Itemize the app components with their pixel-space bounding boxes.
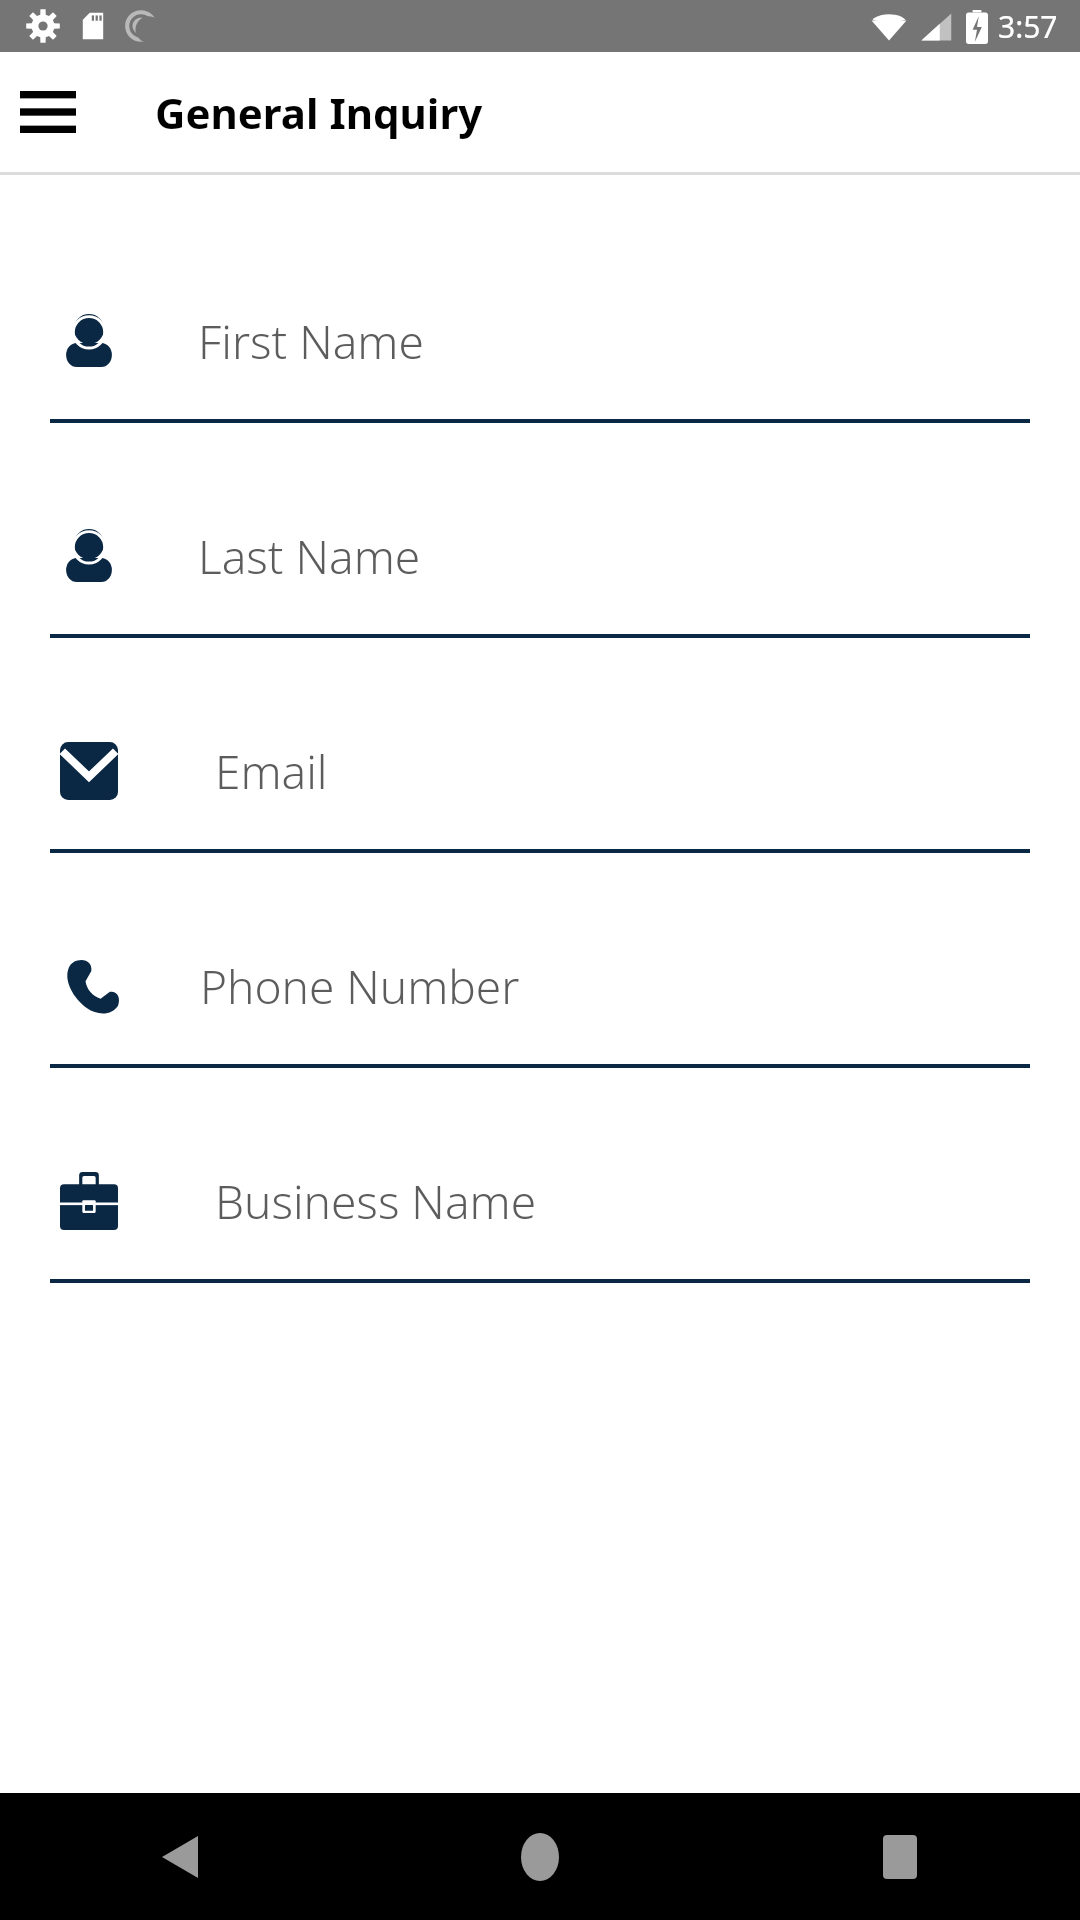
staticText: 3:57 (998, 6, 1058, 47)
button[interactable]: Home (360, 1793, 720, 1920)
staticText: Email (215, 740, 328, 803)
staticText: General Inquiry (155, 84, 483, 141)
button[interactable]: Email (0, 723, 1080, 853)
staticText: Phone Number (200, 955, 520, 1018)
button[interactable]: First Name (0, 293, 1080, 423)
button[interactable]: Open navigation menu (14, 78, 82, 146)
button[interactable]: Back (0, 1793, 360, 1920)
button[interactable]: Last Name (0, 508, 1080, 638)
button[interactable]: Phone Number (0, 938, 1080, 1068)
button[interactable]: Recent apps (720, 1793, 1080, 1920)
staticText: First Name (198, 310, 424, 373)
button[interactable]: Business Name (0, 1153, 1080, 1283)
staticText: Last Name (198, 525, 421, 588)
staticText: Business Name (215, 1170, 537, 1233)
